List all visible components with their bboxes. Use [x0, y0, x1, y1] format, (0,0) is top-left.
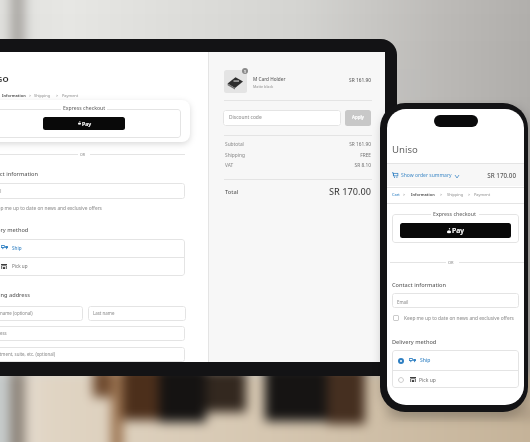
staticText: Cart — [392, 192, 400, 197]
staticText: Subtotal — [225, 141, 244, 148]
staticText: M Card Holder — [253, 76, 286, 82]
staticText: LOGO — [0, 74, 9, 85]
staticText: SR 161.90 — [331, 77, 371, 84]
button[interactable]: Pay with Apple Pay — [43, 117, 125, 130]
button[interactable]: Discount code — [223, 110, 341, 126]
button[interactable]: Keep me up to date on news and exclusive… — [392, 313, 518, 323]
button[interactable]: Email — [392, 293, 519, 308]
staticText: Delivery method — [392, 338, 437, 346]
button[interactable]: Ship — [392, 350, 519, 369]
staticText: SR 170.00 — [291, 185, 371, 198]
staticText: OR — [448, 260, 454, 265]
staticText: Payment — [62, 93, 79, 98]
staticText: Contact information — [0, 170, 39, 178]
button[interactable]: Email — [0, 183, 185, 199]
button[interactable]: Pick up — [392, 370, 519, 388]
staticText: Shipping — [225, 152, 245, 159]
staticText: Express checkout — [433, 210, 477, 217]
staticText: Uniso — [392, 143, 418, 156]
staticText: Email — [0, 188, 2, 194]
staticText: > — [403, 192, 406, 197]
staticText: > — [440, 192, 443, 197]
staticText: Shipping — [34, 93, 51, 98]
staticText: Information — [411, 192, 435, 197]
staticText: SR 8.10 — [331, 162, 371, 169]
staticText: Ship — [12, 245, 22, 251]
staticText: Matte black — [253, 84, 274, 89]
staticText: OR — [80, 152, 86, 157]
staticText: SR 161.90 — [331, 141, 371, 148]
staticText: Apply — [345, 114, 371, 120]
button[interactable]: Pick up — [0, 258, 185, 277]
staticText: Delivery method — [0, 226, 29, 234]
staticText: VAT — [225, 162, 234, 169]
button[interactable]: Pay with Apple Pay — [400, 223, 511, 238]
staticText: Show order summary — [401, 172, 452, 179]
button[interactable]: Keep me up to date on news and exclusive… — [0, 203, 185, 213]
staticText: Pick up — [12, 263, 28, 269]
staticText: > — [468, 192, 471, 197]
staticText: Pick up — [419, 377, 436, 384]
button[interactable]: Apply discount code — [345, 110, 371, 126]
staticText: FREE — [331, 152, 371, 159]
staticText: Shipping — [447, 192, 464, 197]
staticText: Address — [0, 330, 7, 336]
staticText: Express checkout — [63, 105, 106, 112]
button[interactable]: Show order summary — [387, 163, 524, 186]
staticText: First name (optional) — [0, 310, 33, 316]
staticText: Apartment, suite, etc. (optional) — [0, 351, 56, 357]
staticText: SR 170.00 — [476, 171, 516, 180]
staticText: Email — [397, 299, 409, 305]
staticText: Pay — [82, 120, 92, 127]
staticText: Keep me up to date on news and exclusive… — [404, 315, 514, 322]
staticText: Information — [2, 93, 26, 98]
staticText: Pay — [452, 226, 464, 236]
staticText: Ship — [420, 357, 431, 364]
staticText: 1 — [244, 69, 246, 74]
staticText: > — [56, 93, 59, 98]
staticText: Discount code — [229, 114, 262, 121]
staticText: Payment — [474, 192, 491, 197]
staticText: Last name — [93, 310, 115, 316]
staticText: Shipping address — [0, 291, 31, 299]
staticText: Contact information — [392, 281, 447, 289]
button[interactable]: Ship — [0, 239, 185, 257]
staticText: Total — [225, 188, 239, 196]
staticText: > — [29, 93, 32, 98]
staticText: Keep me up to date on news and exclusive… — [0, 205, 102, 212]
